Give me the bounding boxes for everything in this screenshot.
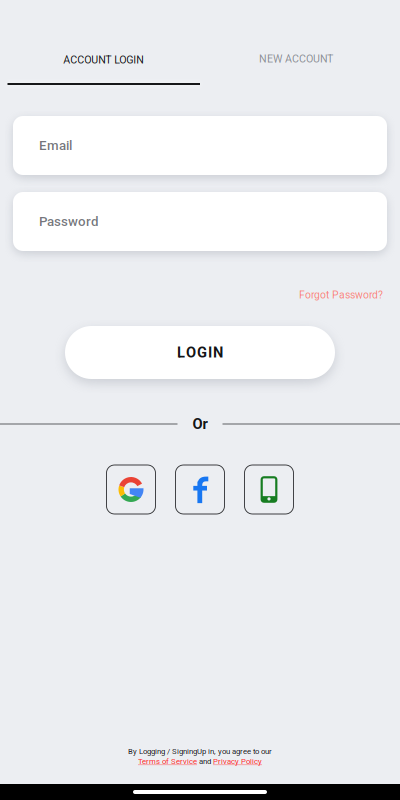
staticText: Privacy Policy <box>213 757 262 766</box>
button[interactable]: L O G I N <box>65 326 335 379</box>
button[interactable]: Privacy Policy <box>213 757 262 766</box>
staticText: By Logging / SigningUp in, you agree to … <box>128 747 272 756</box>
staticText: Forgot Password? <box>299 289 383 301</box>
button[interactable]: Email <box>13 116 387 175</box>
button[interactable]: Continue with phone number <box>244 465 293 514</box>
staticText: L O G I N <box>177 344 223 361</box>
staticText: NEW ACCOUNT <box>259 52 333 65</box>
staticText: Email <box>39 138 72 153</box>
button[interactable]: Password <box>13 192 387 251</box>
staticText: Terms of Service <box>138 757 197 766</box>
button[interactable]: NEW ACCOUNT <box>200 0 400 85</box>
staticText: and <box>197 757 213 766</box>
button[interactable]: Forgot Password? <box>299 289 383 301</box>
staticText: Password <box>39 214 99 229</box>
button[interactable]: Terms of Service <box>138 757 197 766</box>
staticText: Or <box>192 415 207 433</box>
button[interactable]: Continue with Facebook <box>175 465 224 514</box>
staticText: ACCOUNT LOGIN <box>63 53 144 66</box>
button[interactable]: Continue with Google <box>106 465 155 514</box>
button[interactable]: ACCOUNT LOGIN <box>0 0 200 85</box>
